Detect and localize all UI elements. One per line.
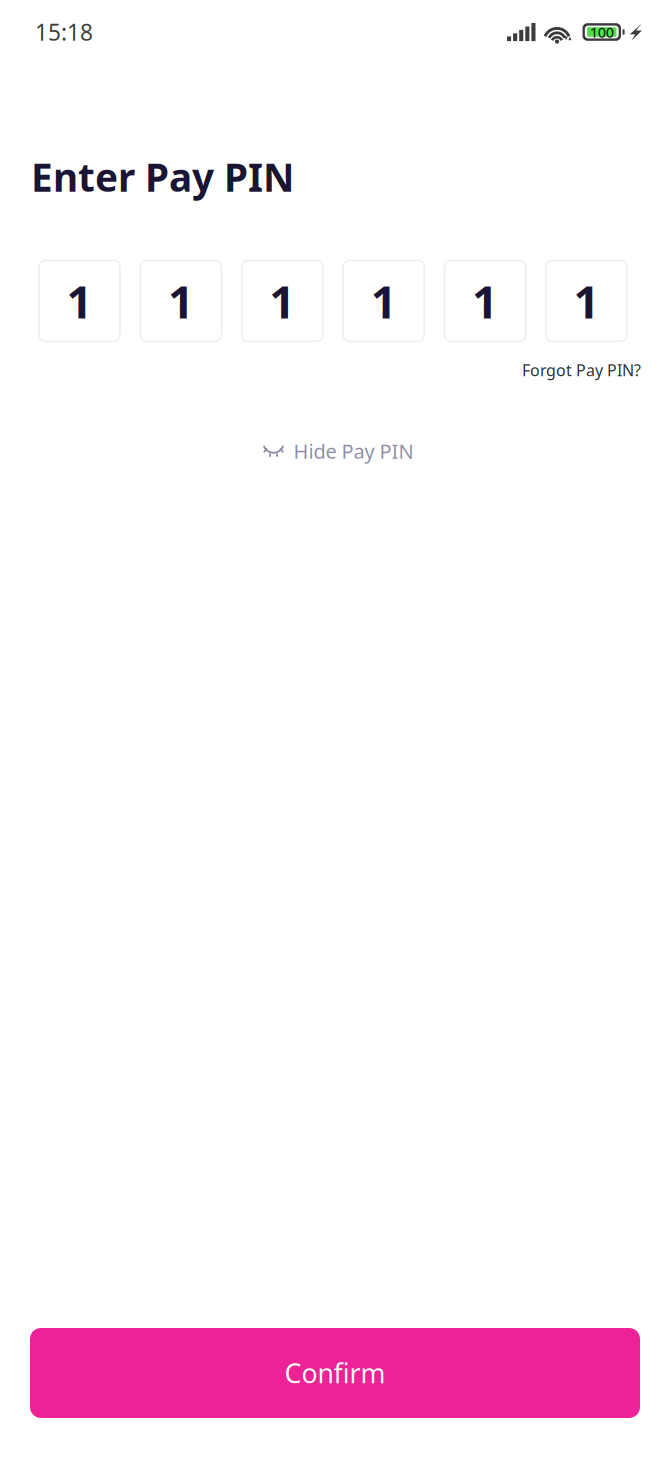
staticText: Hide Pay PIN <box>293 438 413 464</box>
button[interactable]: Forgot Pay PIN? <box>522 359 641 380</box>
button[interactable]: Hide Pay PIN <box>262 438 413 464</box>
staticText: 100 <box>590 22 614 42</box>
button[interactable]: 1 <box>546 260 627 341</box>
button[interactable]: 1 <box>39 260 120 341</box>
staticText: Enter Pay PIN <box>31 151 294 202</box>
staticText: 1 <box>66 271 92 331</box>
button[interactable]: Confirm <box>30 1328 640 1418</box>
button[interactable]: 1 <box>445 260 526 341</box>
button[interactable]: 1 <box>140 260 221 341</box>
staticText: 1 <box>472 271 498 331</box>
staticText: Forgot Pay PIN? <box>522 359 641 380</box>
staticText: Confirm <box>284 1355 385 1391</box>
staticText: 1 <box>573 271 599 331</box>
staticText: 15:18 <box>35 17 93 47</box>
staticText: 1 <box>269 271 295 331</box>
staticText: 1 <box>371 271 397 331</box>
button[interactable]: 1 <box>242 260 323 341</box>
staticText: 1 <box>168 271 194 331</box>
button[interactable]: 1 <box>343 260 424 341</box>
